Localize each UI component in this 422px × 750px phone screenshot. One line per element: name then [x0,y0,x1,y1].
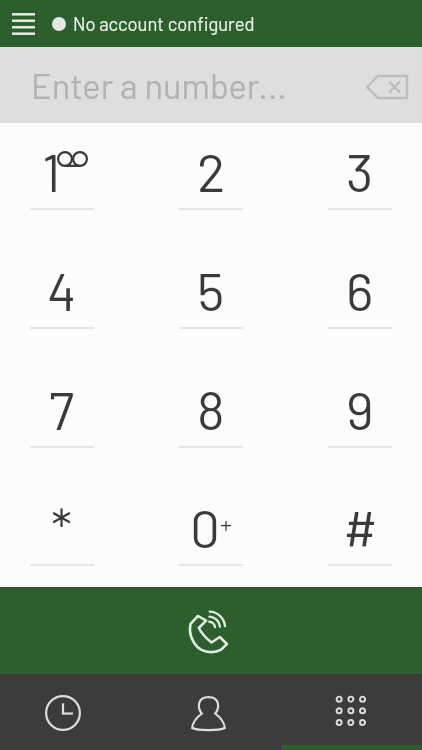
button[interactable]: 6 [298,220,422,341]
staticText: 2 [197,139,226,203]
button[interactable]: 9 [298,339,422,460]
button[interactable]: Recent calls [0,674,140,750]
button[interactable]: * [0,457,124,578]
button[interactable]: 3 [298,123,422,222]
staticText: 0 [190,495,220,559]
button[interactable]: 1 [0,123,124,222]
staticText: No account configured [73,13,255,35]
staticText: 7 [49,377,75,441]
button[interactable]: 5 [149,220,273,341]
staticText: 4 [47,258,77,322]
button[interactable]: 8 [149,339,273,460]
button[interactable]: 7 [0,339,124,460]
staticText: 6 [346,258,374,322]
staticText: # [343,495,378,559]
staticText: + [220,509,232,538]
staticText: 8 [197,377,225,441]
button[interactable]: # [298,457,422,578]
staticText: Enter a number... [31,65,287,106]
button[interactable]: Call [0,587,422,674]
button[interactable]: Backspace [346,47,422,123]
staticText: 3 [346,139,374,203]
button[interactable]: 0 [149,457,273,578]
staticText: 5 [197,258,225,322]
button[interactable]: Dialer [281,674,422,750]
button[interactable]: Contacts [140,674,281,750]
button[interactable]: 2 [149,123,273,222]
staticText: 9 [346,377,374,441]
button[interactable]: Menu [0,0,47,47]
staticText: * [51,495,73,559]
staticText: 1 [42,139,61,203]
button[interactable]: 4 [0,220,124,341]
